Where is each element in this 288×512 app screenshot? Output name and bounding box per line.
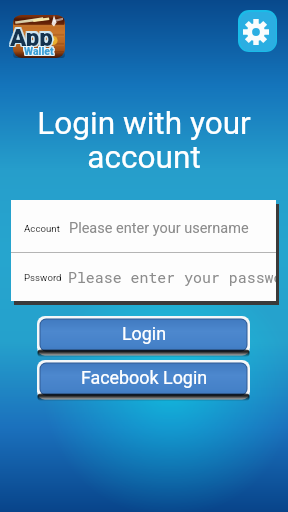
staticText: Login [37,323,251,344]
staticText: Wallet [23,44,53,56]
staticText: Please enter your username [69,220,249,237]
button[interactable]: Pssword [11,253,276,301]
button[interactable]: Account [11,200,276,252]
staticText: Wallet [23,45,53,57]
staticText: Wallet [25,45,55,57]
staticText: Wallet [23,46,53,58]
staticText: Wallet [25,44,55,56]
staticText: App [11,22,54,50]
staticText: App [9,24,52,52]
staticText: App [10,22,53,50]
staticText: Wallet [25,46,55,58]
staticText: Login with your account [30,105,258,176]
staticText: App [9,22,52,50]
button[interactable]: Settings [238,10,277,52]
staticText: Wallet [24,46,54,58]
staticText: App [10,25,53,53]
staticText: Account [24,223,60,234]
staticText: Wallet [24,44,54,56]
button[interactable]: Login [37,316,251,356]
staticText: App [11,24,54,52]
staticText: Pssword [24,272,62,283]
staticText: Wallet [24,45,54,57]
staticText: App [11,25,54,53]
staticText: App [9,25,52,53]
button[interactable]: Facebook Login [37,360,251,400]
staticText: Facebook Login [37,367,251,388]
staticText: Please enter your password [68,267,276,287]
staticText: App [10,24,53,52]
